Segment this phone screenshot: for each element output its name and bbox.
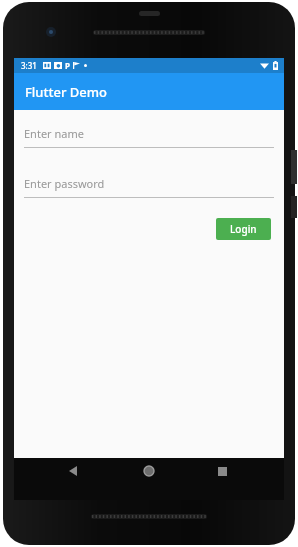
staticText: Login bbox=[230, 222, 257, 236]
button[interactable]: Login bbox=[216, 218, 271, 240]
button[interactable]: Home bbox=[138, 460, 160, 482]
staticText: Enter password bbox=[24, 176, 105, 191]
button[interactable]: Enter password bbox=[24, 176, 274, 198]
button[interactable]: Enter name bbox=[24, 126, 274, 148]
button[interactable]: Back bbox=[62, 460, 84, 482]
staticText: Enter name bbox=[24, 126, 84, 141]
staticText: 3:31 bbox=[21, 60, 37, 71]
button[interactable]: Recent apps bbox=[211, 460, 233, 482]
staticText: P bbox=[65, 60, 70, 71]
staticText: Flutter Demo bbox=[25, 83, 108, 101]
